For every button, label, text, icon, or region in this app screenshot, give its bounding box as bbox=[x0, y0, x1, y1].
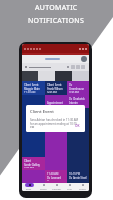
staticText: 7:30 PM bbox=[69, 91, 79, 93]
staticText: NOTIFICATIONS bbox=[28, 16, 85, 26]
staticText: Sarah Oakley bbox=[24, 163, 40, 167]
staticText: Maggie Blain bbox=[24, 87, 40, 91]
staticText: Appointment bbox=[47, 101, 64, 105]
button[interactable]: 10:15 PM bbox=[67, 170, 89, 183]
button[interactable]: Profile bbox=[76, 183, 89, 191]
button[interactable]: OK bbox=[74, 124, 81, 128]
staticText: Sara Adrian has checked in 11:30 AM for … bbox=[30, 118, 81, 128]
button[interactable]: Book bbox=[22, 183, 36, 191]
button[interactable]: Client Event bbox=[45, 81, 67, 95]
button[interactable]: Dr. Greenhouse bbox=[67, 81, 89, 95]
staticText: Chat bbox=[67, 188, 72, 191]
button[interactable]: Calendar bbox=[50, 183, 63, 191]
staticText: Client Event bbox=[24, 83, 39, 87]
button[interactable]: Client bbox=[22, 157, 45, 170]
staticText: Client bbox=[24, 159, 31, 163]
staticText: Profile bbox=[79, 188, 86, 191]
staticText: OK bbox=[75, 124, 80, 128]
staticText: Dr. Greenhouse bbox=[69, 83, 87, 91]
staticText: AUTOMATIC bbox=[35, 3, 78, 13]
button[interactable]: Search bbox=[36, 183, 50, 191]
staticText: Interim bbox=[69, 101, 79, 105]
staticText: 9:00 PM bbox=[47, 91, 57, 93]
staticText: Book bbox=[26, 188, 32, 191]
staticText: Client Event bbox=[30, 109, 54, 115]
staticText: Dr. Leonard Hay bbox=[47, 176, 65, 181]
staticText: Search bbox=[40, 188, 47, 191]
staticText: 11:30 AM bbox=[24, 91, 36, 93]
staticText: Dr. Annie Steel bbox=[69, 176, 87, 180]
button[interactable]: Chat bbox=[63, 183, 76, 191]
staticText: Calendar bbox=[52, 188, 62, 191]
button[interactable]: 11:30 AM bbox=[45, 170, 67, 183]
button[interactable]: Client Event bbox=[22, 81, 45, 95]
staticText: Client Event bbox=[47, 83, 62, 87]
staticText: Dr. Chadwick bbox=[69, 97, 85, 101]
button[interactable]: Appointment bbox=[45, 99, 67, 111]
staticText: Frank Wilson bbox=[47, 87, 63, 91]
staticText: 3:00 PM bbox=[24, 167, 34, 168]
staticText: 10:15 PM bbox=[69, 172, 81, 176]
button[interactable]: Dr. Chadwick bbox=[67, 95, 89, 108]
staticText: 11:30 AM bbox=[47, 172, 59, 176]
